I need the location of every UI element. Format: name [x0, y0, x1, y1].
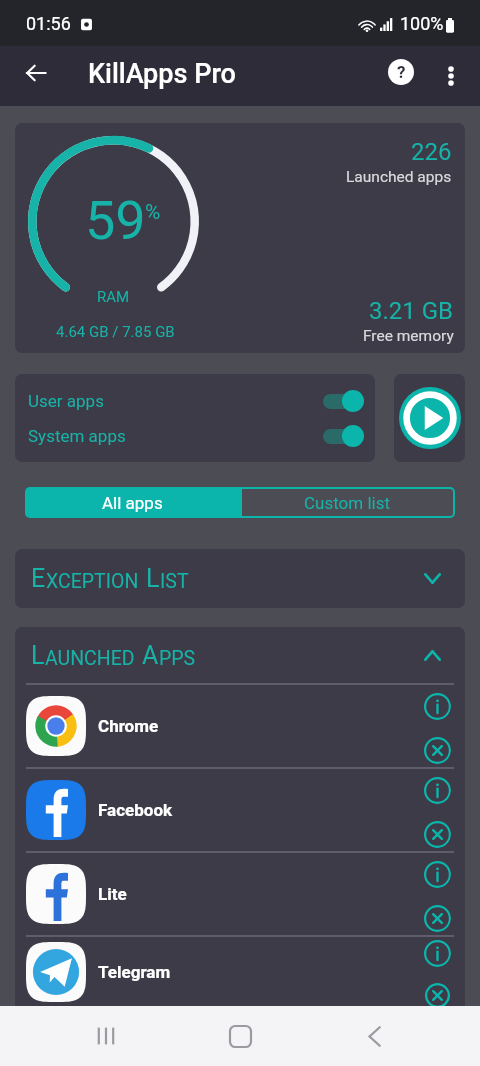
button[interactable]: App info: [423, 939, 451, 967]
button[interactable]: Help: [377, 48, 425, 96]
staticText: 4.64 GB / 7.85 GB: [56, 323, 175, 341]
staticText: %: [145, 200, 161, 225]
staticText: IST: [160, 570, 189, 593]
staticText: Launched apps: [346, 168, 452, 186]
staticText: Lite: [98, 884, 423, 904]
staticText: 3.21 GB: [369, 297, 454, 325]
button[interactable]: App info: [423, 776, 451, 804]
staticText: PPS: [159, 647, 196, 670]
staticText: Custom list: [304, 493, 391, 513]
staticText: User apps: [28, 391, 323, 411]
staticText: 01:56: [26, 13, 71, 34]
staticText: AUNCHED: [45, 647, 135, 670]
button[interactable]: Recents: [78, 1008, 134, 1064]
button[interactable]: Back: [13, 53, 59, 99]
staticText: KillApps Pro: [88, 58, 236, 90]
button[interactable]: Back: [346, 1008, 402, 1064]
staticText: ?: [397, 62, 406, 82]
staticText: RAM: [97, 288, 130, 306]
button[interactable]: 59: [15, 123, 465, 353]
button[interactable]: App info: [423, 692, 451, 720]
staticText: 226: [411, 138, 452, 166]
staticText: Facebook: [98, 800, 423, 820]
button[interactable]: Custom list: [240, 487, 455, 518]
button[interactable]: E: [15, 549, 465, 608]
button[interactable]: Facebook: [15, 769, 465, 851]
button[interactable]: Chrome: [15, 685, 465, 767]
staticText: XCEPTION: [46, 570, 139, 593]
button[interactable]: Telegram: [15, 937, 465, 1006]
button[interactable]: Home: [212, 1008, 268, 1064]
staticText: All apps: [102, 493, 163, 513]
staticText: Free memory: [363, 327, 454, 345]
staticText: Chrome: [98, 716, 423, 736]
staticText: A: [142, 641, 159, 670]
staticText: L: [31, 641, 45, 670]
button[interactable]: App info: [423, 860, 451, 888]
button[interactable]: User apps: [28, 390, 364, 412]
staticText: E: [31, 564, 46, 593]
staticText: Telegram: [98, 962, 423, 982]
staticText: 100%: [400, 13, 444, 34]
button[interactable]: Close app: [423, 736, 451, 764]
staticText: 59: [85, 189, 146, 252]
button[interactable]: Close app: [423, 820, 451, 848]
button[interactable]: Lite: [15, 853, 465, 935]
button[interactable]: L: [15, 627, 465, 683]
button[interactable]: All apps: [25, 487, 240, 518]
staticText: System apps: [28, 426, 323, 446]
staticText: L: [146, 564, 160, 593]
button[interactable]: Kill apps: [394, 374, 465, 462]
button[interactable]: System apps: [28, 425, 364, 447]
button[interactable]: Close app: [423, 904, 451, 932]
button[interactable]: Close app: [423, 983, 451, 1006]
button[interactable]: More options: [428, 53, 474, 99]
